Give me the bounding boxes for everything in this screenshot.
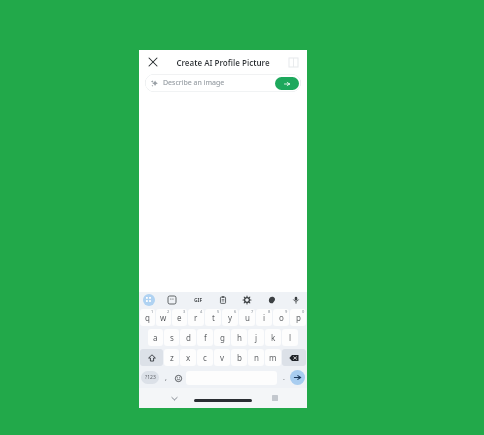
button[interactable]: Clipboard — [216, 293, 230, 307]
staticText: c — [203, 352, 207, 363]
staticText: Create AI Profile Picture — [176, 57, 270, 68]
staticText: ?123 — [145, 374, 156, 381]
staticText: 5 — [217, 309, 220, 314]
staticText: d — [186, 332, 191, 343]
staticText: u — [245, 312, 250, 323]
button[interactable]: w — [156, 309, 171, 326]
button[interactable]: l — [282, 329, 298, 346]
button[interactable]: g — [214, 329, 230, 346]
button[interactable]: q — [140, 309, 155, 326]
staticText: b — [237, 352, 242, 363]
button[interactable]: GIF — [190, 293, 206, 307]
button[interactable]: o — [273, 309, 289, 326]
staticText: , — [165, 373, 167, 383]
button[interactable]: Settings — [240, 293, 254, 307]
staticText: a — [153, 332, 158, 343]
staticText: k — [271, 332, 276, 343]
button[interactable]: Voice input — [289, 293, 303, 307]
button[interactable]: f — [197, 329, 213, 346]
staticText: f — [204, 332, 207, 343]
button[interactable]: . — [279, 371, 288, 385]
button[interactable]: Keyboard layout — [269, 392, 281, 404]
staticText: n — [254, 352, 259, 363]
button[interactable]: i — [256, 309, 272, 326]
button[interactable]: p — [290, 309, 306, 326]
staticText: m — [269, 352, 277, 363]
button[interactable]: Send — [275, 77, 299, 90]
button[interactable]: Backspace — [282, 349, 306, 366]
staticText: 7 — [251, 309, 254, 314]
staticText: o — [279, 312, 284, 323]
button[interactable]: Shift — [140, 349, 163, 366]
button[interactable]: Describe an image — [145, 74, 301, 92]
staticText: t — [212, 312, 215, 323]
button[interactable]: x — [180, 349, 196, 366]
staticText: Describe an image — [163, 78, 225, 88]
button[interactable]: , — [161, 371, 170, 385]
button[interactable]: History — [284, 53, 302, 71]
staticText: x — [186, 352, 191, 363]
staticText: 6 — [234, 309, 237, 314]
staticText: y — [228, 312, 233, 323]
button[interactable]: Close — [144, 53, 162, 71]
button[interactable]: t — [205, 309, 221, 326]
staticText: s — [170, 332, 174, 343]
staticText: 2 — [167, 309, 170, 314]
staticText: p — [296, 312, 301, 323]
staticText: r — [194, 312, 198, 323]
staticText: z — [170, 352, 174, 363]
staticText: j — [255, 332, 258, 343]
staticText: q — [145, 312, 150, 323]
button[interactable]: c — [197, 349, 213, 366]
button[interactable]: b — [231, 349, 247, 366]
staticText: v — [220, 352, 225, 363]
button[interactable]: ?123 — [141, 371, 159, 384]
staticText: . — [283, 373, 285, 383]
staticText: i — [263, 312, 266, 323]
button[interactable]: r — [188, 309, 204, 326]
button[interactable]: Hide keyboard — [167, 391, 181, 405]
button[interactable]: Themes — [265, 293, 279, 307]
button[interactable]: s — [164, 329, 179, 346]
button[interactable]: a — [148, 329, 163, 346]
staticText: l — [289, 332, 292, 343]
button[interactable]: u — [239, 309, 255, 326]
button[interactable]: Emoji — [172, 372, 184, 384]
staticText: g — [220, 332, 225, 343]
button[interactable]: n — [248, 349, 264, 366]
staticText: 3 — [183, 309, 186, 314]
button[interactable]: z — [164, 349, 179, 366]
button[interactable]: k — [265, 329, 281, 346]
button[interactable]: e — [172, 309, 187, 326]
button[interactable]: y — [222, 309, 238, 326]
staticText: GIF — [194, 297, 203, 304]
button[interactable]: Enter — [290, 370, 305, 385]
button[interactable]: v — [214, 349, 230, 366]
button[interactable]: m — [265, 349, 281, 366]
staticText: 4 — [200, 309, 203, 314]
staticText: w — [160, 312, 167, 323]
staticText: h — [237, 332, 242, 343]
button[interactable]: d — [180, 329, 196, 346]
button[interactable]: Stickers — [165, 293, 179, 307]
button[interactable]: Keyboard modes — [143, 294, 155, 306]
staticText: 0 — [302, 309, 305, 314]
button[interactable]: h — [231, 329, 247, 346]
staticText: 8 — [268, 309, 271, 314]
button[interactable]: j — [248, 329, 264, 346]
staticText: 1 — [151, 309, 154, 314]
staticText: 9 — [285, 309, 288, 314]
staticText: e — [177, 312, 182, 323]
